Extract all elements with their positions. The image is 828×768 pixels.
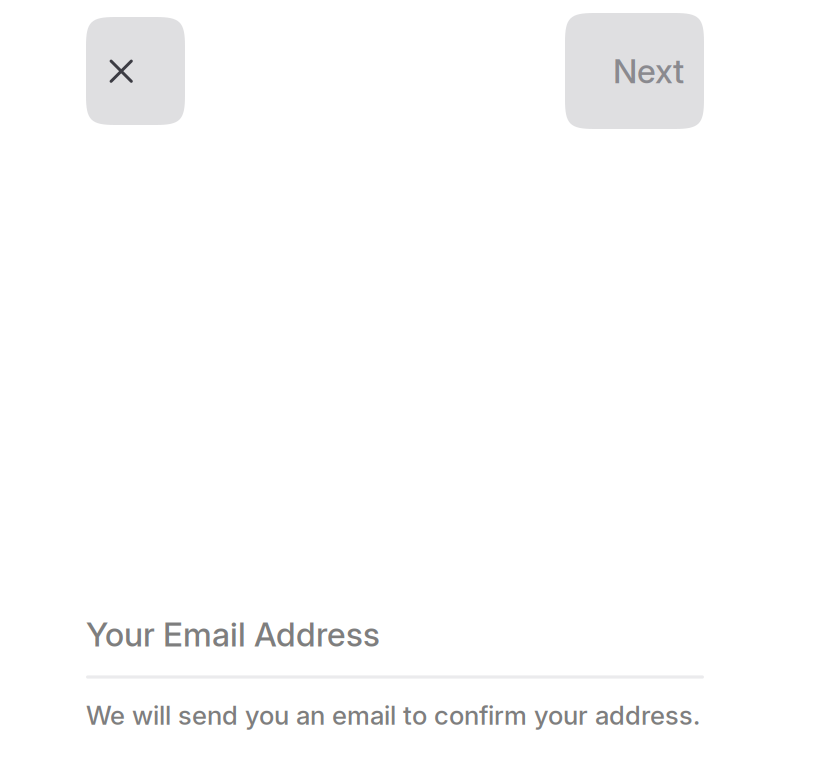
button[interactable]: Next [565,13,704,129]
staticText: We will send you an email to confirm you… [86,700,700,731]
staticText: Your Email Address [86,614,380,654]
staticText: Next [613,51,684,91]
button[interactable]: Close [86,17,185,125]
